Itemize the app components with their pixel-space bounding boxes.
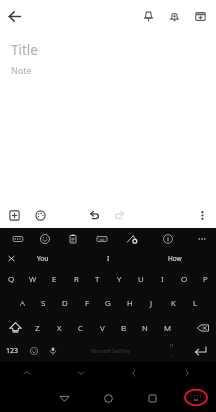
button[interactable]: J [140, 291, 162, 314]
button[interactable]: N [134, 316, 156, 339]
button[interactable]: A [11, 291, 33, 314]
button[interactable]: You [23, 249, 63, 267]
button[interactable]: Backspace [190, 316, 216, 339]
staticText: You [37, 254, 49, 263]
button[interactable]: K [162, 291, 184, 314]
button[interactable]: Emoji [24, 339, 43, 362]
button[interactable]: C [69, 316, 91, 339]
staticText: L [193, 297, 198, 308]
button[interactable]: Redo [110, 206, 128, 224]
button[interactable]: P [194, 267, 216, 290]
button[interactable]: Undo [85, 206, 103, 224]
button[interactable]: Recent apps [139, 385, 165, 411]
button[interactable]: R [65, 267, 87, 290]
staticText: Title [11, 41, 38, 59]
staticText: P [203, 273, 208, 284]
button[interactable]: B [113, 316, 135, 339]
button[interactable]: Archive [190, 6, 211, 27]
button[interactable]: S [32, 291, 54, 314]
button[interactable]: M [156, 316, 178, 339]
button[interactable]: Enter [186, 339, 214, 362]
button[interactable]: U [130, 267, 152, 290]
staticText: R [74, 273, 79, 284]
staticText: J [150, 297, 153, 308]
staticText: X [57, 322, 62, 333]
button[interactable]: Space [63, 339, 158, 362]
button[interactable]: Keyboard settings [93, 229, 111, 249]
button[interactable]: How [153, 249, 197, 267]
button[interactable]: Info [159, 229, 177, 249]
staticText: T [95, 273, 100, 284]
button[interactable]: Move right [174, 364, 200, 382]
button[interactable]: D [54, 291, 76, 314]
staticText: G [105, 297, 111, 308]
button[interactable]: Stickers [123, 229, 141, 249]
button[interactable]: L [184, 291, 206, 314]
staticText: Note [11, 64, 32, 76]
staticText: . [171, 351, 173, 359]
button[interactable]: Add [5, 206, 23, 224]
staticText: I [107, 254, 110, 263]
button[interactable]: Background options [31, 206, 49, 224]
staticText: V [100, 322, 105, 333]
button[interactable]: Q [0, 267, 22, 290]
button[interactable]: V [91, 316, 113, 339]
staticText: C [78, 322, 83, 333]
staticText: F [85, 297, 90, 308]
button[interactable]: Navigate up [3, 5, 25, 27]
staticText: K [171, 297, 176, 308]
button[interactable]: More options [193, 206, 211, 224]
button[interactable]: Voice input [43, 339, 63, 362]
staticText: Microsoft SwiftKey [91, 348, 130, 354]
button[interactable]: I [86, 249, 130, 267]
staticText: !? [170, 343, 174, 350]
button[interactable]: W [22, 267, 44, 290]
button[interactable]: Hide toolbar [2, 249, 20, 267]
button[interactable]: Clipboard [64, 229, 82, 249]
staticText: B [121, 322, 127, 333]
button[interactable]: F [76, 291, 98, 314]
staticText: A [20, 297, 25, 308]
button[interactable]: !? [158, 339, 186, 362]
staticText: N [142, 322, 148, 333]
button[interactable]: Pin note [138, 6, 159, 27]
staticText: M [164, 322, 171, 333]
button[interactable]: Reminder [164, 6, 185, 27]
staticText: Z [35, 322, 40, 333]
button[interactable]: E [43, 267, 65, 290]
staticText: Y [117, 273, 122, 284]
button[interactable]: G [97, 291, 119, 314]
button[interactable]: 123 [0, 339, 24, 362]
button[interactable]: Back [51, 385, 77, 411]
button[interactable]: H [119, 291, 141, 314]
button[interactable]: Home [95, 385, 121, 411]
button[interactable]: GIF [9, 229, 27, 249]
staticText: How [168, 254, 182, 263]
staticText: Q [8, 273, 15, 284]
button[interactable]: Switch keyboard [183, 388, 209, 407]
staticText: U [138, 273, 144, 284]
staticText: W [29, 273, 37, 284]
staticText: E [52, 273, 57, 284]
button[interactable]: Move down [68, 364, 94, 382]
staticText: O [181, 273, 188, 284]
button[interactable]: More options [193, 229, 211, 249]
staticText: S [41, 297, 46, 308]
button[interactable]: Emoji [36, 229, 54, 249]
button[interactable]: Move up [14, 364, 40, 382]
button[interactable]: O [173, 267, 195, 290]
button[interactable]: I [151, 267, 173, 290]
button[interactable]: X [48, 316, 70, 339]
button[interactable]: Move left [121, 364, 147, 382]
staticText: D [62, 297, 68, 308]
button[interactable]: Shift [2, 316, 28, 339]
button[interactable]: Z [26, 316, 48, 339]
staticText: I [161, 273, 164, 284]
staticText: 123 [6, 346, 19, 356]
button[interactable]: Y [108, 267, 130, 290]
staticText: H [127, 297, 133, 308]
button[interactable]: T [86, 267, 108, 290]
